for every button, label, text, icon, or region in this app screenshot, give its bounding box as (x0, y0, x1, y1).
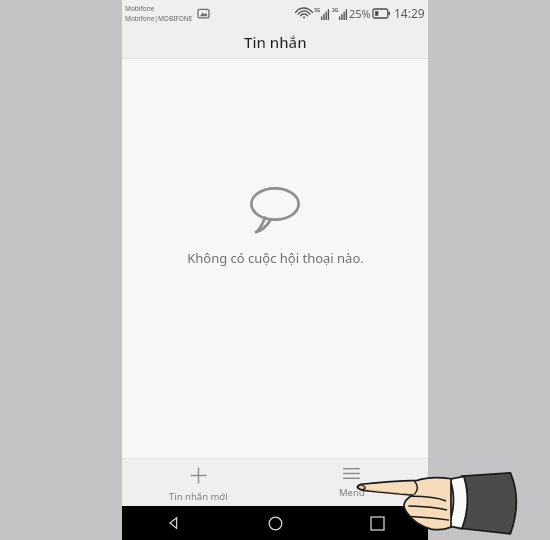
staticText: Mobifone (125, 4, 155, 13)
staticText: Không có cuộc hội thoại nào. (187, 249, 364, 267)
staticText: 25% (349, 6, 371, 21)
staticText: 3G (314, 7, 321, 14)
button[interactable]: Menu (275, 459, 428, 506)
button[interactable]: Recent apps (326, 506, 428, 540)
staticText: 14:29 (394, 5, 425, 21)
button[interactable]: Back (122, 506, 224, 540)
staticText: Tin nhắn mới (169, 490, 228, 503)
button[interactable]: Tin nhắn mới (122, 459, 275, 506)
button[interactable]: Home (224, 506, 326, 540)
staticText: Menu (339, 486, 365, 499)
staticText: Tin nhắn (244, 32, 307, 52)
staticText: Mobifone|MOBIFONE (125, 14, 193, 23)
staticText: 2G (332, 7, 339, 14)
